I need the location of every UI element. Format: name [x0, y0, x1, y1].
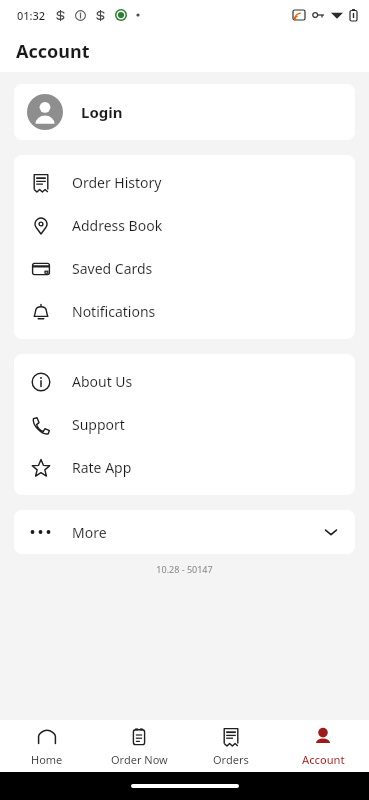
button[interactable]: Account	[277, 720, 369, 772]
button[interactable]: Login	[14, 84, 355, 140]
button[interactable]: Saved Cards	[14, 247, 355, 290]
staticText: 01:32	[17, 8, 46, 23]
button[interactable]: Home	[0, 720, 93, 772]
staticText: 10.28 - 50147	[0, 563, 369, 575]
button[interactable]: Orders	[185, 720, 277, 772]
staticText: More	[72, 523, 107, 542]
button[interactable]: Support	[14, 403, 355, 446]
button[interactable]: Order History	[14, 161, 355, 204]
staticText: Saved Cards	[72, 259, 153, 278]
button[interactable]: Notifications	[14, 290, 355, 333]
staticText: Rate App	[72, 458, 132, 477]
staticText: Order History	[72, 173, 162, 192]
staticText: Order Now	[111, 752, 168, 767]
staticText: Orders	[213, 752, 249, 767]
button[interactable]: About Us	[14, 360, 355, 403]
staticText: Support	[72, 415, 125, 434]
button[interactable]: More	[14, 510, 355, 554]
button[interactable]: Address Book	[14, 204, 355, 247]
staticText: Notifications	[72, 302, 156, 321]
staticText: Home	[31, 752, 63, 767]
button[interactable]: Rate App	[14, 446, 355, 489]
staticText: Account	[302, 752, 345, 767]
staticText: Address Book	[72, 216, 163, 235]
button[interactable]: Order Now	[93, 720, 185, 772]
staticText: Account	[16, 39, 90, 64]
staticText: Login	[81, 102, 123, 122]
staticText: About Us	[72, 372, 133, 391]
